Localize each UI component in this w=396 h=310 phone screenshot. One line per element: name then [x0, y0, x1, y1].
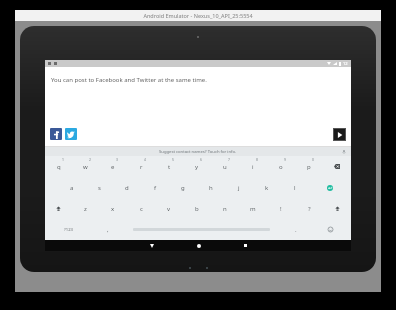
button[interactable]: b [183, 198, 211, 219]
staticText: j [238, 184, 240, 192]
button[interactable]: k [253, 177, 281, 198]
staticText: a [70, 184, 74, 192]
staticText: o [279, 163, 283, 171]
button[interactable]: o [267, 156, 295, 177]
button[interactable]: g [169, 177, 197, 198]
button[interactable]: w [72, 156, 99, 177]
staticText: g [181, 184, 185, 192]
staticText: 8 [256, 157, 258, 162]
button[interactable]: h [197, 177, 225, 198]
button[interactable]: ?123 [45, 219, 93, 240]
staticText: 5 [172, 157, 174, 162]
staticText: c [140, 205, 143, 213]
staticText: ? [308, 205, 311, 213]
staticText: i [252, 163, 254, 171]
staticText: 6 [200, 157, 202, 162]
staticText: . [295, 226, 297, 234]
button[interactable]: Share on Twitter [65, 128, 77, 140]
button[interactable]: j [225, 177, 253, 198]
button[interactable]: r [127, 156, 155, 177]
button[interactable]: Suggest contact names? Touch for info. [45, 147, 351, 156]
button[interactable]: p [295, 156, 323, 177]
button[interactable]: Shift [323, 198, 351, 219]
staticText: 1 [62, 157, 64, 162]
button[interactable]: c [127, 198, 155, 219]
staticText: You can post to Facebook and Twitter at … [51, 76, 207, 84]
button[interactable]: i [239, 156, 267, 177]
staticText: m [250, 205, 256, 213]
staticText: n [223, 205, 227, 213]
staticText: q [57, 163, 61, 171]
staticText: ?123 [64, 227, 74, 233]
button[interactable]: Recent apps [241, 241, 250, 250]
staticText: 4 [144, 157, 146, 162]
button[interactable]: Home [194, 241, 203, 250]
staticText: 3 [116, 157, 118, 162]
staticText: 2 [89, 157, 91, 162]
button[interactable]: Shift [45, 198, 72, 219]
button[interactable]: z [72, 198, 99, 219]
staticText: l [294, 184, 296, 192]
button[interactable]: Back [147, 241, 156, 250]
staticText: f [154, 184, 157, 192]
button[interactable]: s [85, 177, 113, 198]
button[interactable]: Send [333, 128, 346, 141]
button[interactable]: f [141, 177, 169, 198]
staticText: 9 [284, 157, 286, 162]
staticText: w [83, 163, 88, 171]
button[interactable]: v [155, 198, 183, 219]
button[interactable]: t [155, 156, 183, 177]
button[interactable]: y [183, 156, 211, 177]
button[interactable]: u [211, 156, 239, 177]
button[interactable]: Space [122, 219, 281, 240]
staticText: s [98, 184, 101, 192]
staticText: Android Emulator - Nexus_10_API_25:5554 [143, 12, 253, 19]
staticText: 0 [312, 157, 314, 162]
button[interactable]: Enter [309, 177, 351, 198]
staticText: t [168, 163, 171, 171]
button[interactable]: e [99, 156, 127, 177]
staticText: k [265, 184, 269, 192]
staticText: z [84, 205, 87, 213]
staticText: 12 [343, 61, 348, 66]
button[interactable]: Share on Facebook [50, 128, 62, 140]
button[interactable]: ? [295, 198, 323, 219]
staticText: y [195, 163, 199, 171]
staticText: x [111, 205, 115, 213]
staticText: r [140, 163, 143, 171]
staticText: d [125, 184, 129, 192]
button[interactable]: ! [267, 198, 295, 219]
button[interactable]: Emoji [310, 219, 351, 240]
staticText: h [209, 184, 213, 192]
staticText: b [195, 205, 199, 213]
staticText: 7 [228, 157, 230, 162]
button[interactable]: l [281, 177, 309, 198]
button[interactable]: n [211, 198, 239, 219]
button[interactable]: d [113, 177, 141, 198]
button[interactable]: a [58, 177, 85, 198]
staticText: v [167, 205, 171, 213]
staticText: Suggest contact names? Touch for info. [159, 149, 237, 155]
button[interactable]: x [99, 198, 127, 219]
staticText: e [111, 163, 115, 171]
button[interactable]: m [239, 198, 267, 219]
staticText: ! [280, 205, 282, 213]
staticText: u [223, 163, 227, 171]
button[interactable]: q [45, 156, 72, 177]
staticText: p [307, 163, 311, 171]
staticText: , [107, 226, 109, 234]
button[interactable]: Backspace [323, 156, 351, 177]
